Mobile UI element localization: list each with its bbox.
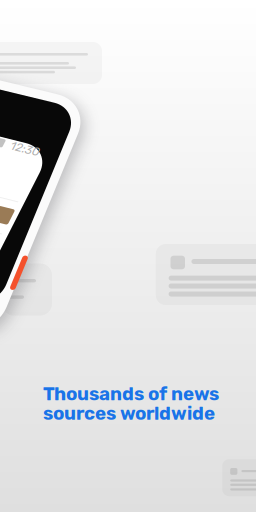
staticText: sources worldwide bbox=[43, 402, 215, 424]
staticText: Thousands of news bbox=[43, 383, 219, 405]
